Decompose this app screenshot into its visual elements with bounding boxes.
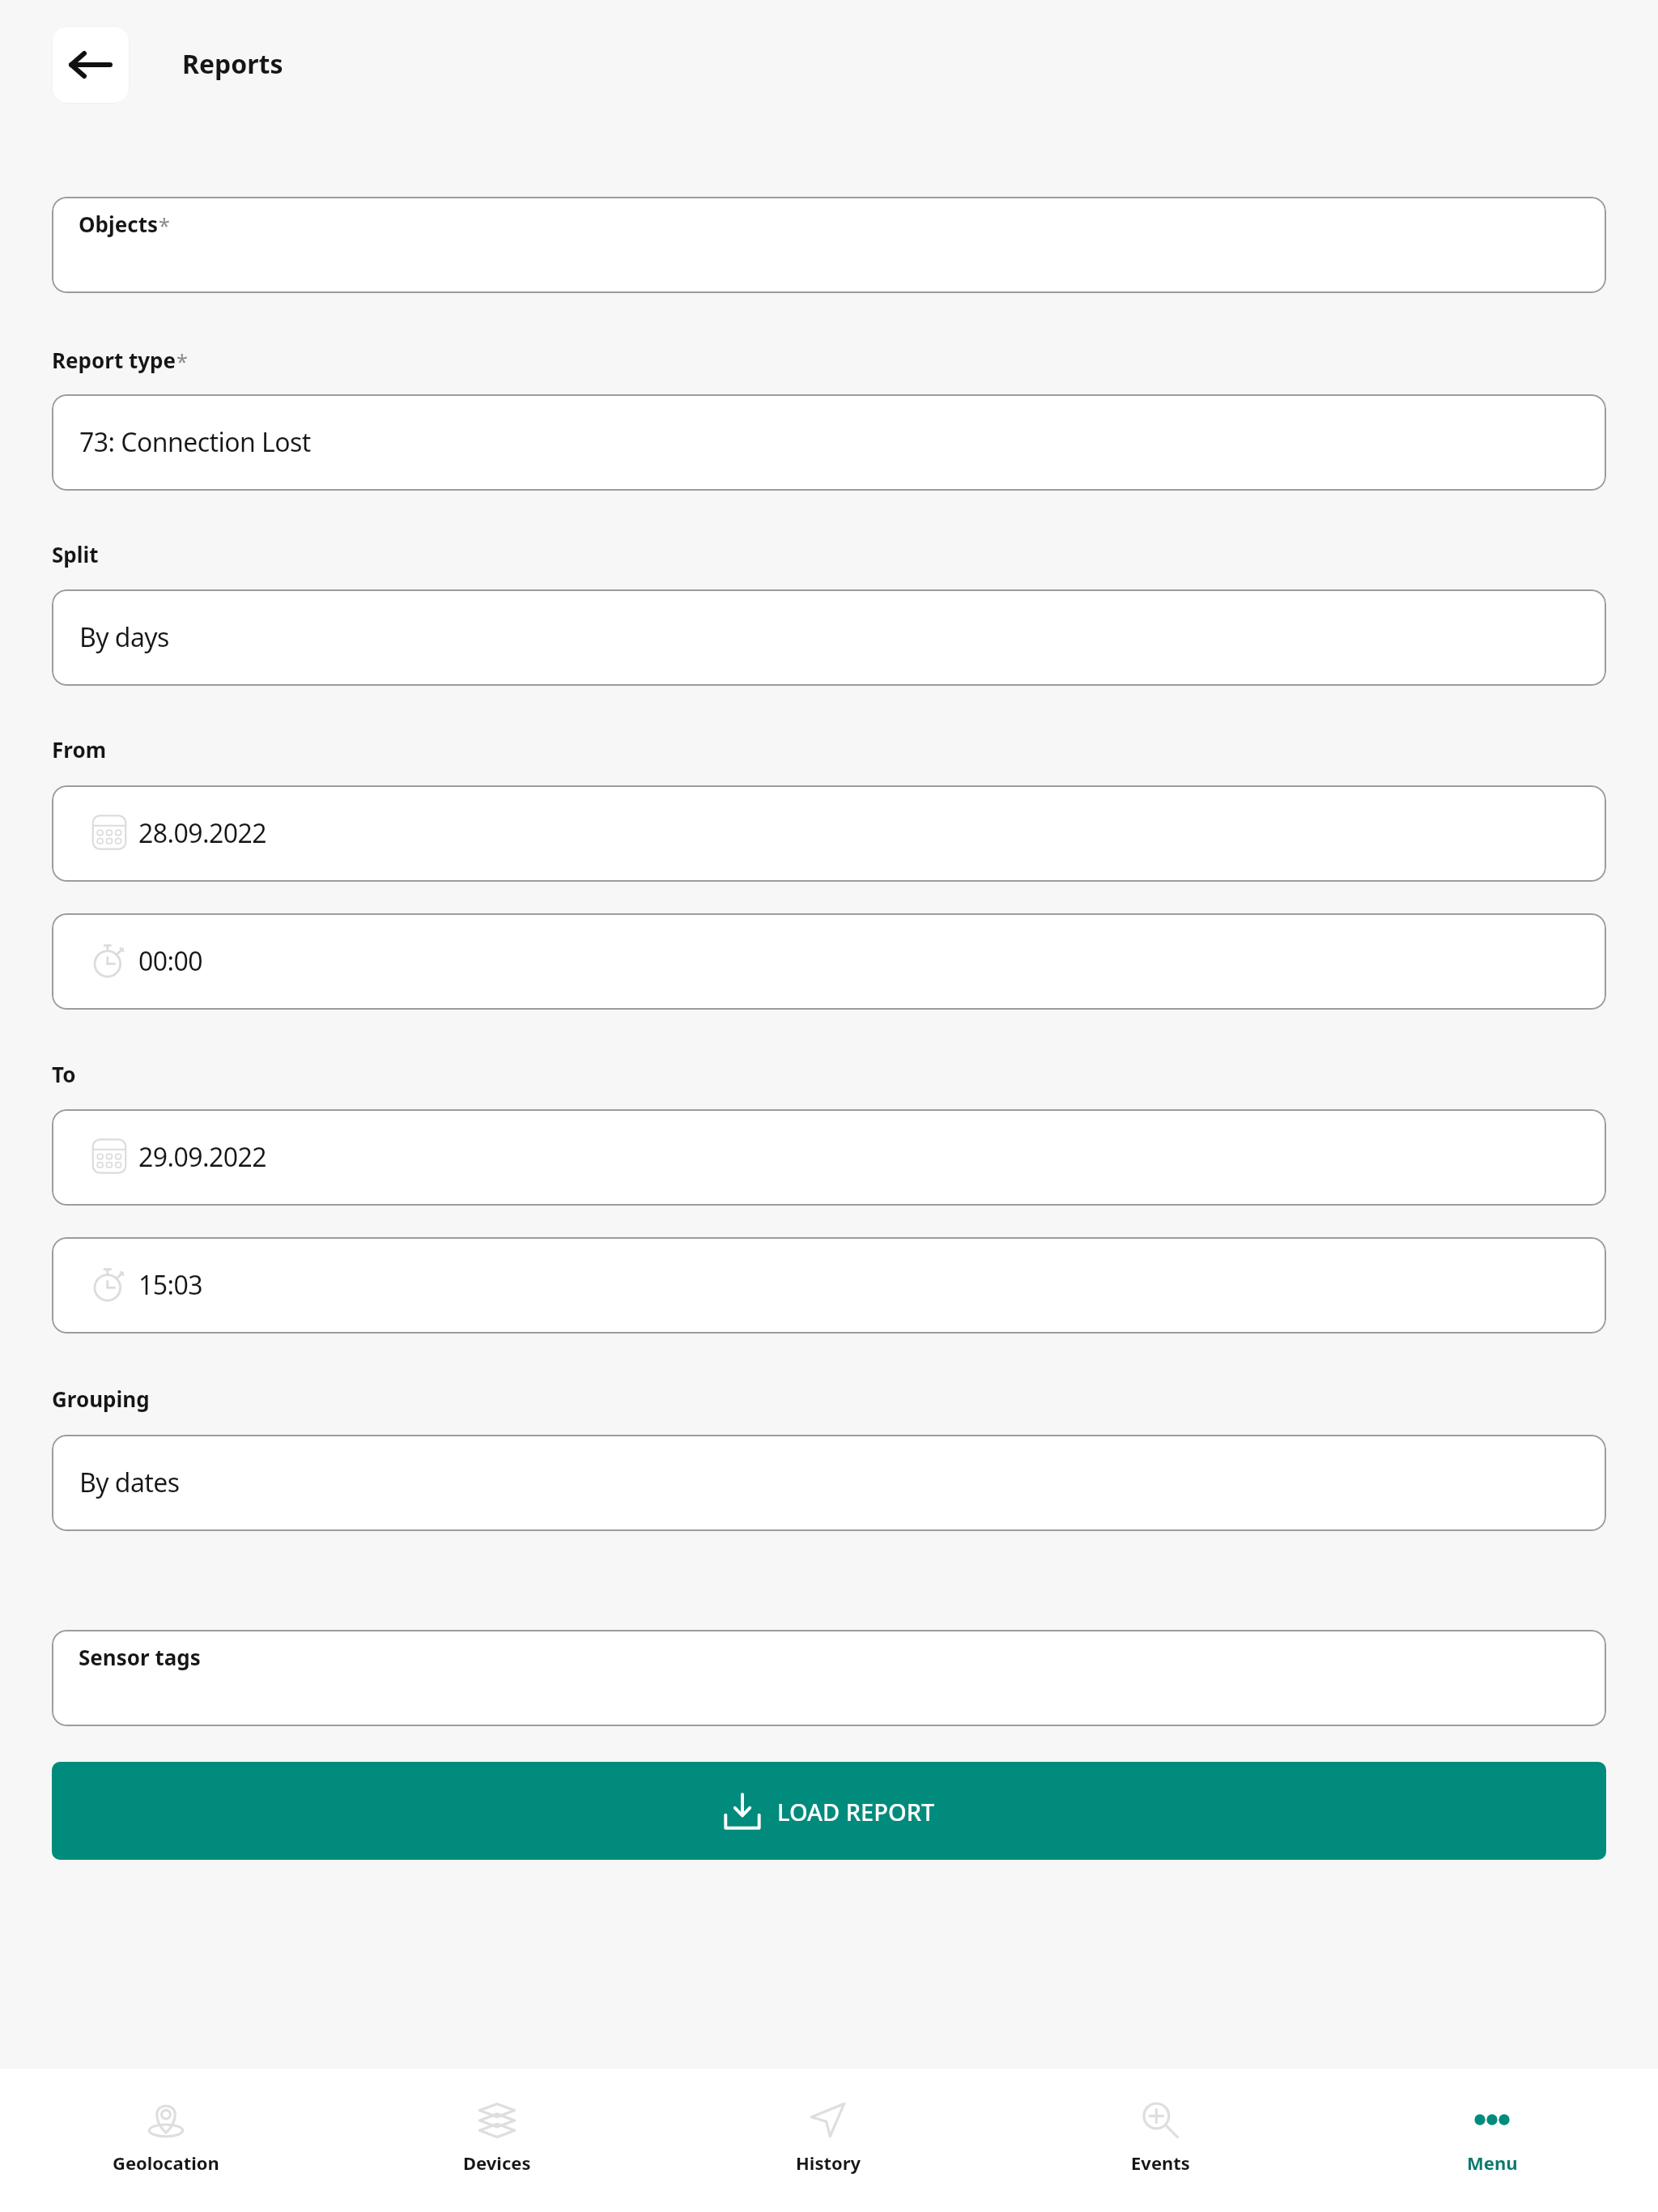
staticText: Objects (79, 210, 159, 238)
button[interactable]: By dates (52, 1435, 1606, 1531)
button[interactable]: History (662, 2069, 994, 2212)
button[interactable]: 29.09.2022 (52, 1109, 1606, 1206)
staticText: History (796, 2150, 861, 2175)
button[interactable]: Events (994, 2069, 1326, 2212)
staticText: From (52, 735, 106, 764)
staticText: Devices (463, 2150, 531, 2175)
staticText: 15:03 (138, 1267, 203, 1303)
staticText: 29.09.2022 (138, 1139, 267, 1175)
button[interactable]: 15:03 (52, 1237, 1606, 1334)
staticText: By days (79, 619, 169, 655)
staticText: * (159, 211, 170, 239)
staticText: Split (52, 540, 99, 568)
button[interactable]: By days (52, 589, 1606, 686)
staticText: Geolocation (113, 2150, 219, 2175)
staticText: Grouping (52, 1385, 150, 1413)
button[interactable]: 00:00 (52, 913, 1606, 1010)
button[interactable]: 73: Connection Lost (52, 394, 1606, 491)
button[interactable]: 28.09.2022 (52, 785, 1606, 882)
staticText: Report type (52, 346, 176, 374)
staticText: LOAD REPORT (777, 1796, 935, 1827)
staticText: 73: Connection Lost (79, 424, 311, 460)
staticText: Reports (182, 46, 283, 82)
button[interactable]: Menu (1326, 2069, 1658, 2212)
button[interactable]: Devices (331, 2069, 662, 2212)
button[interactable]: Sensor tags (52, 1630, 1606, 1726)
button[interactable]: LOAD REPORT (52, 1762, 1606, 1860)
button[interactable]: Geolocation (0, 2069, 331, 2212)
staticText: Sensor tags (79, 1643, 201, 1671)
staticText: 00:00 (138, 943, 203, 979)
staticText: To (52, 1060, 76, 1088)
staticText: * (176, 347, 188, 375)
staticText: By dates (79, 1465, 180, 1500)
staticText: Events (1131, 2150, 1190, 2175)
button[interactable]: Objects (52, 197, 1606, 293)
staticText: Menu (1467, 2150, 1518, 2175)
staticText: 28.09.2022 (138, 815, 267, 851)
button[interactable]: Back (52, 26, 130, 104)
